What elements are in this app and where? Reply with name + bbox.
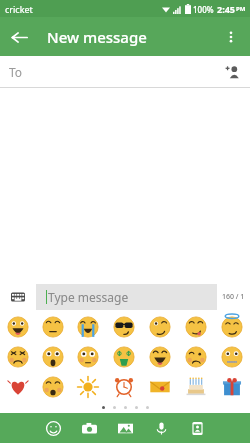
button[interactable]: Voice <box>146 413 176 443</box>
button[interactable]: Emoji <box>106 342 142 372</box>
button[interactable]: Emoji <box>0 312 35 342</box>
button[interactable]: Emoji <box>0 372 35 402</box>
button[interactable]: Emoji <box>106 312 142 342</box>
button[interactable]: Keyboard <box>8 287 28 307</box>
staticText: 2:45 <box>217 3 235 15</box>
button[interactable]: Emoji <box>70 372 106 402</box>
button[interactable]: Type message <box>36 284 217 310</box>
button[interactable]: Emoji <box>38 413 68 443</box>
button[interactable]: Add contact <box>217 57 247 87</box>
button[interactable]: To <box>0 56 250 87</box>
button[interactable]: Back <box>0 18 38 56</box>
button[interactable]: Emoji <box>142 312 178 342</box>
button[interactable]: Emoji <box>142 342 178 372</box>
staticText: New message <box>47 27 147 47</box>
staticText: Type message <box>48 289 129 305</box>
button[interactable]: Emoji <box>214 342 250 372</box>
button[interactable]: Emoji <box>178 372 214 402</box>
button[interactable]: Emoji <box>70 312 106 342</box>
staticText: cricket <box>5 3 33 15</box>
button[interactable]: Emoji <box>106 372 142 402</box>
button[interactable]: Emoji <box>142 372 178 402</box>
button[interactable]: Emoji <box>178 312 214 342</box>
button[interactable]: Emoji <box>35 372 70 402</box>
button[interactable]: Emoji <box>214 312 250 342</box>
button[interactable]: More options <box>212 18 250 56</box>
button[interactable]: Contact <box>182 413 212 443</box>
button[interactable]: Emoji <box>35 312 70 342</box>
button[interactable]: Emoji <box>0 342 35 372</box>
button[interactable]: Emoji <box>214 372 250 402</box>
button[interactable]: Gallery <box>110 413 140 443</box>
staticText: PM <box>236 5 246 13</box>
button[interactable]: Emoji <box>70 342 106 372</box>
button[interactable]: Emoji <box>178 342 214 372</box>
staticText: 160 / 1 <box>222 292 245 302</box>
button[interactable]: Emoji <box>35 342 70 372</box>
staticText: 100% <box>193 4 214 15</box>
staticText: To <box>9 64 23 80</box>
button[interactable]: Camera <box>74 413 104 443</box>
